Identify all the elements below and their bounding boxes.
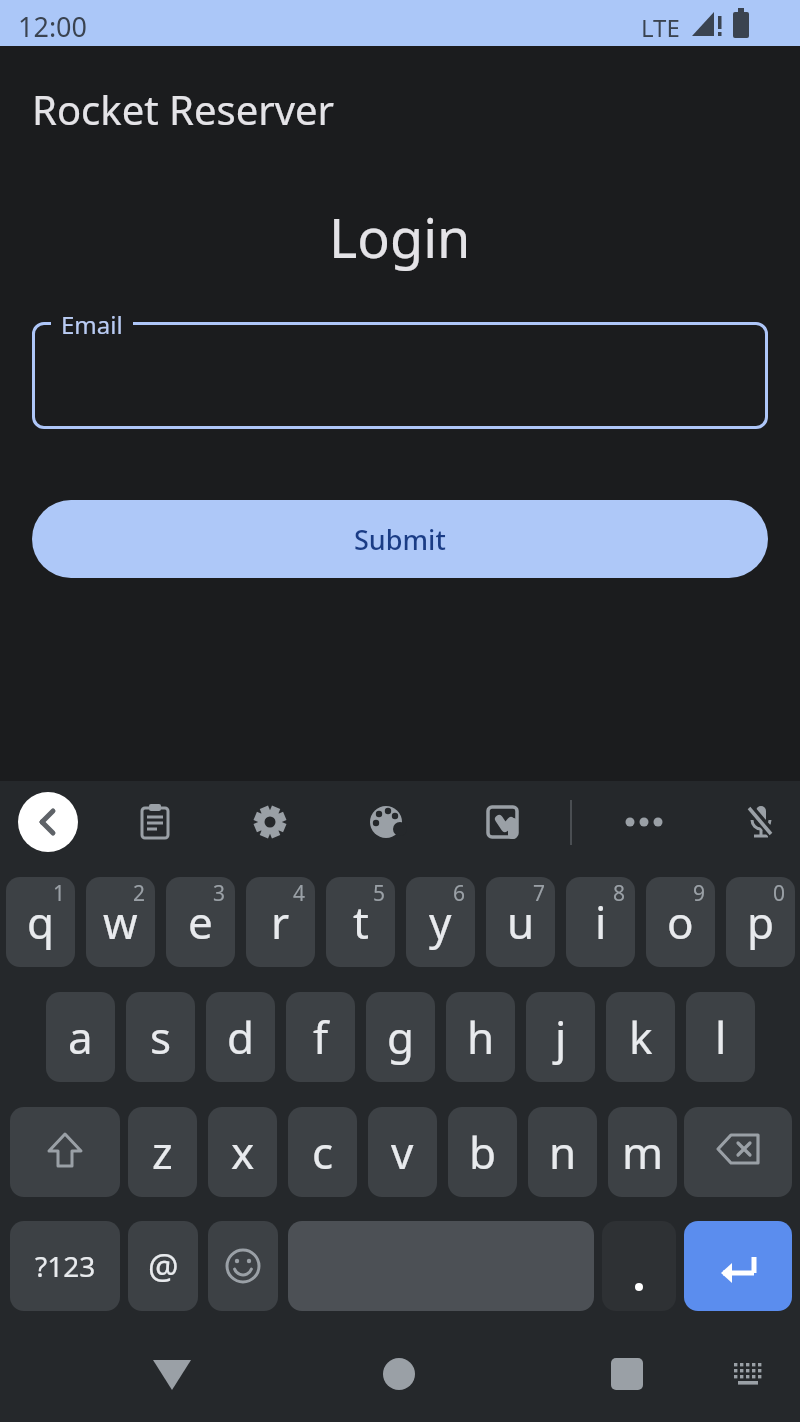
button[interactable]: i — [566, 877, 635, 967]
staticText: 1 — [53, 879, 66, 908]
button[interactable]: v — [368, 1107, 437, 1197]
staticText: a — [68, 1007, 93, 1067]
button[interactable]: s — [126, 992, 195, 1082]
button[interactable]: h — [446, 992, 515, 1082]
staticText: w — [103, 892, 138, 952]
staticText: d — [227, 1007, 255, 1067]
staticText: 8 — [613, 879, 626, 908]
staticText: Submit — [354, 521, 446, 558]
staticText: 3 — [213, 879, 226, 908]
staticText: c — [312, 1122, 334, 1182]
staticText: 4 — [293, 879, 306, 908]
button[interactable] — [10, 1107, 120, 1197]
staticText: Login — [329, 200, 471, 274]
staticText: y — [429, 892, 452, 952]
staticText: b — [469, 1122, 497, 1182]
button[interactable] — [599, 1346, 655, 1402]
staticText: t — [353, 892, 369, 952]
button[interactable]: f — [286, 992, 355, 1082]
staticText: h — [467, 1007, 495, 1067]
button[interactable]: j — [526, 992, 595, 1082]
staticText: l — [715, 1007, 727, 1067]
button[interactable]: u — [486, 877, 555, 967]
staticText: LTE — [641, 11, 680, 44]
staticText: i — [595, 892, 607, 952]
button[interactable]: a — [46, 992, 115, 1082]
staticText: 12:00 — [18, 8, 88, 45]
staticText: 6 — [453, 879, 466, 908]
button[interactable] — [144, 1346, 200, 1402]
button[interactable] — [602, 1221, 676, 1311]
staticText: u — [507, 892, 535, 952]
button[interactable]: n — [528, 1107, 597, 1197]
button[interactable]: c — [288, 1107, 357, 1197]
button[interactable]: g — [366, 992, 435, 1082]
button[interactable]: q — [6, 877, 75, 967]
staticText: 9 — [693, 879, 706, 908]
button[interactable]: m — [608, 1107, 677, 1197]
button[interactable] — [742, 803, 780, 841]
staticText: @ — [148, 1243, 179, 1289]
button[interactable] — [208, 1221, 278, 1311]
staticText: Email — [61, 308, 123, 341]
button[interactable]: d — [206, 992, 275, 1082]
button[interactable]: l — [686, 992, 755, 1082]
staticText: ?123 — [35, 1247, 96, 1285]
staticText: 7 — [533, 879, 546, 908]
button[interactable]: w — [86, 877, 155, 967]
button[interactable] — [625, 803, 663, 841]
button[interactable]: Submit — [32, 500, 768, 578]
button[interactable]: r — [246, 877, 315, 967]
staticText: g — [387, 1007, 415, 1067]
staticText: 0 — [773, 879, 786, 908]
staticText: k — [629, 1007, 653, 1067]
staticText: z — [152, 1122, 173, 1182]
button[interactable]: ?123 — [10, 1221, 120, 1311]
staticText: e — [188, 892, 213, 952]
staticText: q — [27, 892, 55, 952]
staticText: x — [231, 1122, 255, 1182]
button[interactable] — [288, 1221, 594, 1311]
button[interactable] — [18, 792, 78, 852]
staticText: Rocket Reserver — [32, 82, 335, 136]
button[interactable]: b — [448, 1107, 517, 1197]
button[interactable]: x — [208, 1107, 277, 1197]
button[interactable]: o — [646, 877, 715, 967]
staticText: s — [150, 1007, 172, 1067]
staticText: n — [549, 1122, 577, 1182]
staticText: p — [747, 892, 775, 952]
button[interactable] — [371, 1346, 427, 1402]
button[interactable]: @ — [128, 1221, 198, 1311]
button[interactable] — [136, 803, 174, 841]
button[interactable] — [684, 1221, 792, 1311]
button[interactable] — [32, 322, 768, 429]
staticText: r — [271, 892, 290, 952]
button[interactable] — [251, 803, 289, 841]
button[interactable]: t — [326, 877, 395, 967]
button[interactable] — [684, 1107, 792, 1197]
staticText: f — [313, 1007, 329, 1067]
button[interactable] — [722, 1349, 774, 1401]
button[interactable] — [483, 803, 521, 841]
button[interactable]: z — [128, 1107, 197, 1197]
staticText: j — [555, 1007, 567, 1067]
staticText: v — [391, 1122, 414, 1182]
staticText: o — [667, 892, 694, 952]
button[interactable]: y — [406, 877, 475, 967]
staticText: 2 — [133, 879, 146, 908]
button[interactable]: e — [166, 877, 235, 967]
button[interactable]: k — [606, 992, 675, 1082]
staticText: 5 — [373, 879, 386, 908]
button[interactable] — [367, 803, 405, 841]
staticText: m — [622, 1122, 664, 1182]
button[interactable]: p — [726, 877, 795, 967]
